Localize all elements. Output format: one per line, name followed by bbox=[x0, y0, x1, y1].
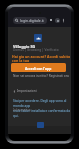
button[interactable]: Accedi con l'app bbox=[11, 63, 66, 72]
button[interactable]: Continue bbox=[37, 122, 44, 128]
button[interactable]: login.digitale.it bbox=[13, 17, 47, 24]
staticText: login.digitale.it bbox=[20, 18, 44, 23]
button[interactable]: Impostazioni bbox=[13, 89, 37, 93]
staticText: Villaggio SG bbox=[13, 44, 36, 49]
staticText: Stai per accedere. Degli app sono al mon… bbox=[13, 99, 71, 118]
button[interactable]: Voice search bbox=[48, 17, 54, 23]
button[interactable]: Account bbox=[54, 17, 60, 23]
staticText: Accedi con l'app bbox=[25, 66, 52, 70]
staticText: Hai gia un account? Accedi subito con la… bbox=[12, 54, 71, 67]
button[interactable]: More options bbox=[60, 17, 66, 23]
staticText: Domus | Browsing | Verificato bbox=[13, 48, 59, 52]
staticText: Informativa bbox=[13, 108, 31, 112]
staticText: Non sei ancora iscritto? Registrati ora bbox=[13, 74, 69, 78]
staticText: Impostazioni bbox=[17, 89, 37, 93]
